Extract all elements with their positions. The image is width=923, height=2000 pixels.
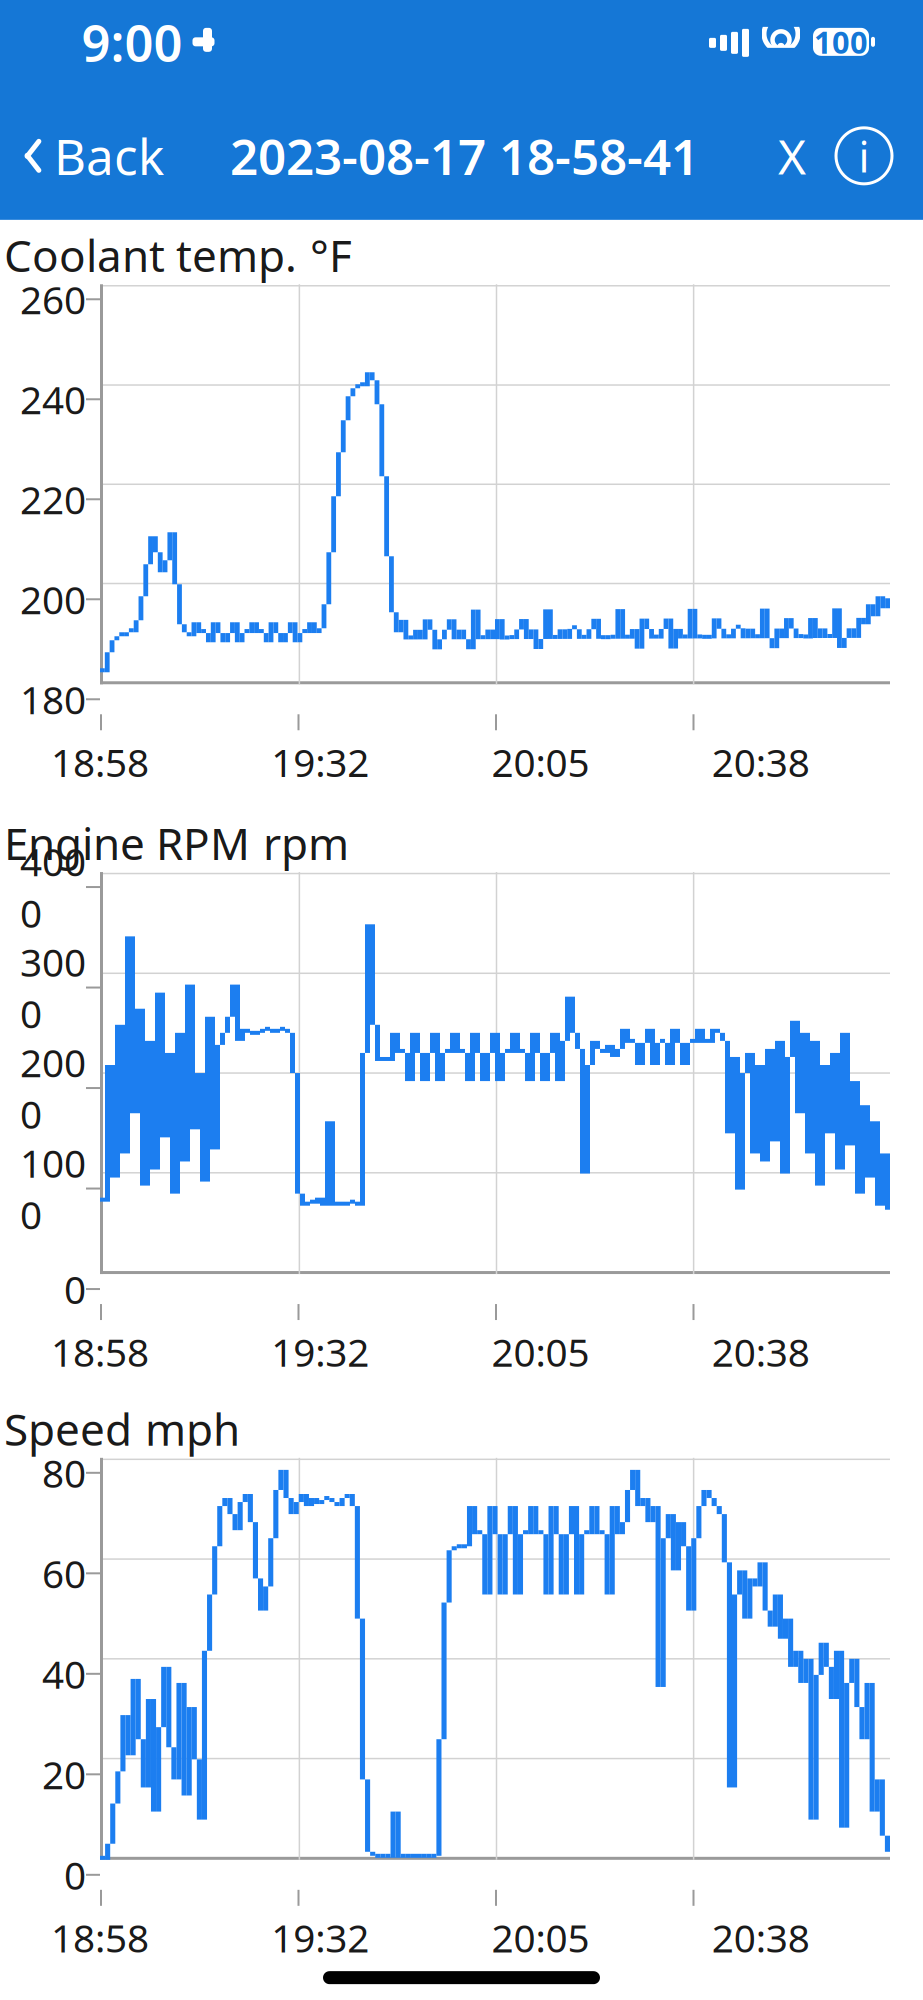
staticText: 9:00 [81, 8, 182, 75]
staticText: 180 [20, 674, 86, 725]
staticText: Engine RPM [4, 814, 250, 872]
staticText: 200 [20, 574, 86, 625]
staticText: 4000 [20, 836, 86, 938]
staticText: °F [310, 226, 352, 284]
staticText: 19:32 [271, 1912, 369, 1963]
staticText: 18:58 [51, 1912, 149, 1963]
staticText: Back [54, 123, 164, 189]
staticText: 260 [20, 274, 86, 325]
staticText: 20:38 [712, 1912, 810, 1963]
staticText: 19:32 [271, 736, 369, 788]
staticText: X [778, 124, 806, 188]
staticText: 0 [64, 1849, 86, 1900]
staticText: 20:38 [712, 1326, 810, 1377]
staticText: 220 [20, 474, 86, 525]
staticText: i [858, 127, 869, 184]
staticText: 240 [20, 374, 86, 425]
staticText: 19:32 [271, 1326, 369, 1377]
staticText: 0 [64, 1263, 86, 1315]
staticText: 2023-08-17 18-58-41 [230, 123, 699, 189]
staticText: Speed [4, 1399, 132, 1458]
staticText: 20:05 [491, 1912, 589, 1963]
staticText: 2000 [20, 1037, 86, 1139]
staticText: 100 [814, 21, 868, 62]
staticText: 3000 [20, 936, 86, 1039]
button[interactable]: Back [0, 113, 164, 199]
staticText: 20 [42, 1749, 86, 1800]
staticText: 20:05 [491, 736, 589, 788]
staticText: 80 [42, 1447, 86, 1498]
staticText: 20:38 [712, 736, 810, 788]
staticText: 40 [42, 1648, 86, 1699]
staticText: 60 [42, 1548, 86, 1599]
button[interactable]: Close [765, 129, 819, 183]
staticText: Coolant temp. [4, 226, 297, 284]
staticText: 18:58 [51, 736, 149, 788]
staticText: 1000 [20, 1137, 86, 1240]
staticText: 20:05 [491, 1326, 589, 1377]
staticText: 18:58 [51, 1326, 149, 1377]
button[interactable]: Info [833, 125, 895, 187]
staticText: mph [145, 1399, 240, 1458]
staticText: rpm [263, 814, 349, 872]
